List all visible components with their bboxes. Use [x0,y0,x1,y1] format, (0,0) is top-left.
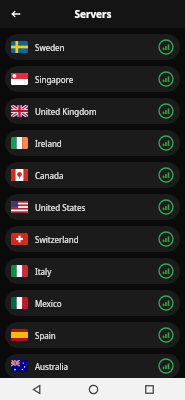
button[interactable]: United States [5,194,180,220]
staticText: Australia [35,361,69,372]
staticText: Singapore [35,74,74,85]
button[interactable]: Singapore [5,66,180,92]
staticText: Ireland [35,138,62,149]
staticText: Mexico [35,298,62,309]
button[interactable]: Spain [5,322,180,348]
button[interactable]: Home [83,379,103,399]
button[interactable]: Back [26,379,46,399]
button[interactable]: Sweden [5,34,180,60]
staticText: United Kingdom [35,106,97,117]
staticText: Switzerland [35,234,79,245]
staticText: Spain [35,330,56,341]
staticText: United States [35,202,86,213]
button[interactable]: Mexico [5,290,180,316]
staticText: Canada [35,170,64,181]
button[interactable]: Canada [5,162,180,188]
staticText: Italy [35,266,52,277]
button[interactable]: Back [6,4,26,24]
staticText: Servers [74,7,112,21]
button[interactable]: United Kingdom [5,98,180,124]
button[interactable]: Australia [5,354,180,378]
button[interactable]: Italy [5,258,180,284]
button[interactable]: Switzerland [5,226,180,252]
staticText: Sweden [35,42,65,53]
button[interactable]: Ireland [5,130,180,156]
button[interactable]: Recent apps [139,379,159,399]
